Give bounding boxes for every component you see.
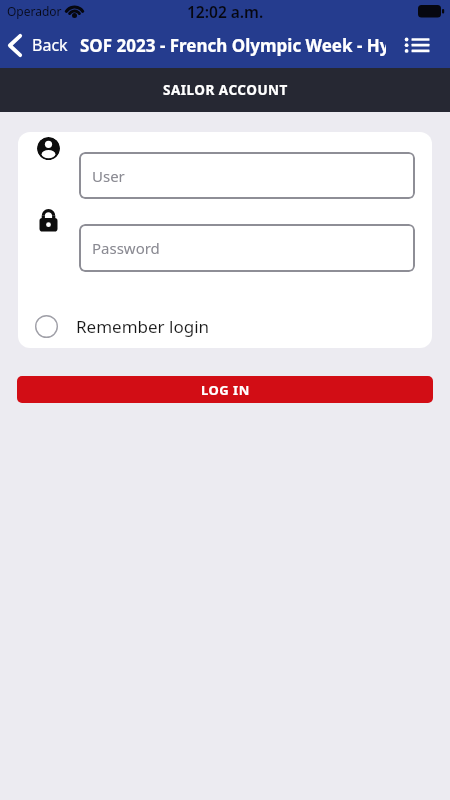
staticText: User bbox=[92, 166, 125, 186]
staticText: 12:02 a.m. bbox=[187, 1, 264, 22]
staticText: Operador bbox=[7, 3, 62, 19]
staticText: SAILOR ACCOUNT bbox=[163, 81, 288, 99]
staticText: LOG IN bbox=[201, 381, 250, 399]
staticText: Password bbox=[92, 238, 160, 258]
button[interactable]: Back bbox=[0, 22, 68, 68]
staticText: Remember login bbox=[76, 315, 210, 338]
button[interactable]: User bbox=[79, 152, 415, 199]
button[interactable] bbox=[404, 37, 450, 54]
button[interactable]: Password bbox=[79, 224, 415, 272]
button[interactable]: LOG IN bbox=[17, 376, 433, 403]
staticText: SOF 2023 - French Olympic Week - Hyères … bbox=[80, 34, 386, 57]
staticText: Back bbox=[32, 34, 68, 56]
button[interactable]: Remember login bbox=[35, 315, 210, 338]
